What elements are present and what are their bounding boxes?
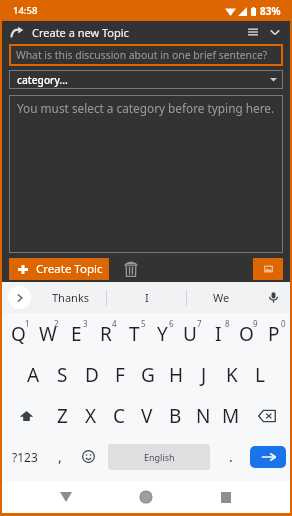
button[interactable]: Y [148,313,176,354]
button[interactable]: S [48,354,77,395]
button[interactable]: You must select a category before typing… [9,95,283,253]
button[interactable]: A [19,354,48,395]
button[interactable]: R [91,313,120,354]
staticText: R [100,321,112,347]
staticText: 0 [281,318,286,329]
staticText: T [129,321,140,347]
staticText: Q [11,321,26,347]
button[interactable]: E [62,313,91,354]
staticText: X [85,403,97,429]
staticText: K [226,362,238,388]
staticText: I [145,290,149,305]
button[interactable]: Z [48,395,77,436]
button[interactable]: L [246,354,274,395]
staticText: , [58,447,62,466]
staticText: O [239,321,254,347]
button[interactable]: Enter [247,436,288,477]
button[interactable]: H [162,354,190,395]
staticText: 2 [54,318,59,329]
button[interactable]: Create Topic [18,258,103,280]
button[interactable]: G [134,354,162,395]
staticText: F [115,362,125,388]
staticText: 8 [225,318,230,329]
staticText: 4 [112,318,117,329]
button[interactable]: Recents [186,481,266,513]
staticText: P [268,321,280,347]
button[interactable]: Expand [268,25,282,39]
button[interactable]: T [120,313,148,354]
button[interactable]: B [161,395,189,436]
staticText: C [113,403,126,429]
button[interactable]: K [218,354,246,395]
button[interactable]: ?123 [4,436,45,477]
staticText: J [201,362,207,388]
button[interactable]: N [189,395,217,436]
button[interactable]: Shift [4,395,48,436]
staticText: Z [57,403,68,429]
button[interactable]: Delete [125,261,137,278]
button[interactable]: W [33,313,62,354]
button[interactable]: category... [9,70,283,89]
staticText: M [222,403,240,429]
button[interactable]: English [103,436,215,477]
button[interactable]: More suggestions [2,282,36,313]
staticText: L [255,362,265,388]
button[interactable]: F [106,354,134,395]
staticText: E [71,321,82,347]
staticText: 1 [25,318,30,329]
button[interactable]: Thanks [36,282,106,313]
staticText: D [85,362,99,388]
staticText: 6 [169,318,174,329]
button[interactable]: What is this discussion about in one bri… [9,44,283,66]
staticText: ?123 [12,449,38,465]
staticText: Thanks [52,290,90,305]
button[interactable]: Backspace [245,395,288,436]
button[interactable]: Q [4,313,33,354]
staticText: G [141,362,155,388]
button[interactable]: Emoji [74,436,103,477]
button[interactable]: Insert image [253,258,283,280]
button[interactable]: Voice input [256,282,290,313]
staticText: What is this discussion about in one bri… [16,48,268,62]
staticText: W [39,321,57,347]
staticText: . [229,447,233,466]
button[interactable]: P [260,313,288,354]
staticText: 14:58 [13,4,38,17]
button[interactable]: I [204,313,232,354]
staticText: Y [157,321,168,347]
button[interactable]: U [176,313,204,354]
button[interactable]: Back [26,481,106,513]
button[interactable]: I [107,282,186,313]
staticText: S [57,362,68,388]
button[interactable]: Home [106,481,186,513]
button[interactable]: J [190,354,218,395]
staticText: A [27,362,40,388]
staticText: Create Topic [36,261,103,277]
button[interactable]: M [217,395,245,436]
staticText: category... [17,73,68,87]
staticText: 83% [260,4,281,18]
button[interactable]: , [45,436,74,477]
staticText: 7 [197,318,202,329]
staticText: Create a new Topic [32,25,129,40]
staticText: We [213,290,230,305]
staticText: U [183,321,197,347]
button[interactable]: O [232,313,260,354]
button[interactable]: List [246,25,260,39]
staticText: I [215,321,222,347]
staticText: V [141,403,153,429]
button[interactable]: . [215,436,247,477]
staticText: 3 [83,318,88,329]
staticText: B [169,403,182,429]
button[interactable]: X [77,395,105,436]
button[interactable]: We [187,282,256,313]
button[interactable]: Share [10,25,24,39]
staticText: You must select a category before typing… [17,100,275,116]
staticText: English [144,451,175,463]
staticText: N [196,403,211,429]
button[interactable]: C [105,395,133,436]
button[interactable]: V [133,395,161,436]
button[interactable]: D [77,354,106,395]
staticText: 9 [253,318,258,329]
staticText: 5 [141,318,146,329]
